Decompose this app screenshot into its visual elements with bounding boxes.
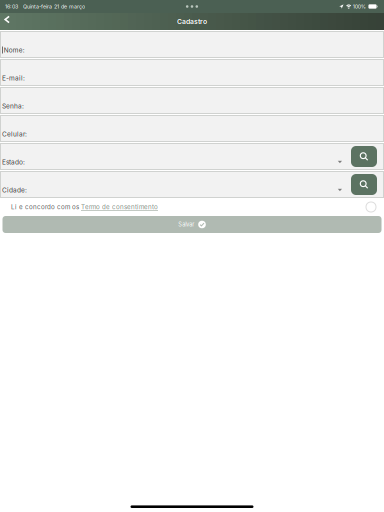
staticText: Termo de consentimento — [81, 203, 158, 211]
staticText: Nome: — [4, 46, 25, 54]
staticText: Li e concordo com os — [11, 203, 81, 211]
staticText: Salvar — [178, 221, 194, 228]
staticText: Quinta-feira 21 de março — [23, 3, 85, 10]
button[interactable]: Li e concordo com os — [0, 198, 384, 216]
staticText: Cidade: — [2, 186, 27, 194]
staticText: 16:03 — [5, 3, 18, 10]
button[interactable]: Voltar — [1, 13, 13, 30]
button[interactable]: Buscar — [351, 174, 377, 195]
staticText: Senha: — [2, 102, 24, 110]
staticText: E-mail: — [2, 74, 25, 82]
staticText: Estado: — [2, 158, 25, 166]
button[interactable]: Salvar — [0, 216, 384, 233]
staticText: 100% — [353, 3, 366, 10]
staticText: Celular: — [2, 130, 27, 138]
staticText: Cadastro — [177, 17, 207, 26]
button[interactable]: Buscar — [351, 146, 377, 167]
